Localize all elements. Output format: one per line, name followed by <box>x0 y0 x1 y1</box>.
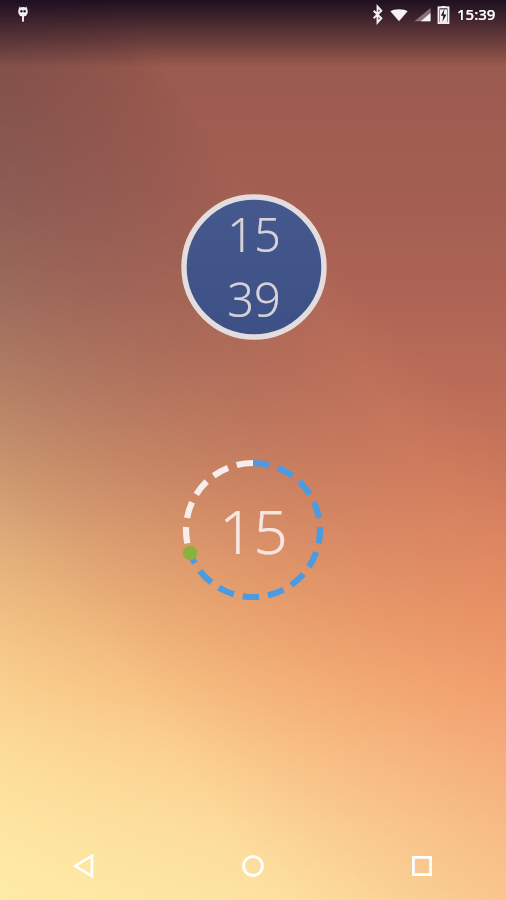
staticText: 39 <box>227 267 281 331</box>
staticText: 15:39 <box>457 4 496 24</box>
staticText: 15 <box>219 490 288 572</box>
button[interactable]: Clock 15:39 <box>181 194 327 340</box>
staticText: 15 <box>227 202 281 266</box>
button[interactable]: Back <box>0 832 168 900</box>
button[interactable]: Home <box>168 832 337 900</box>
button[interactable]: Timer 15 minutes <box>180 457 326 603</box>
button[interactable]: Recent apps <box>337 832 506 900</box>
